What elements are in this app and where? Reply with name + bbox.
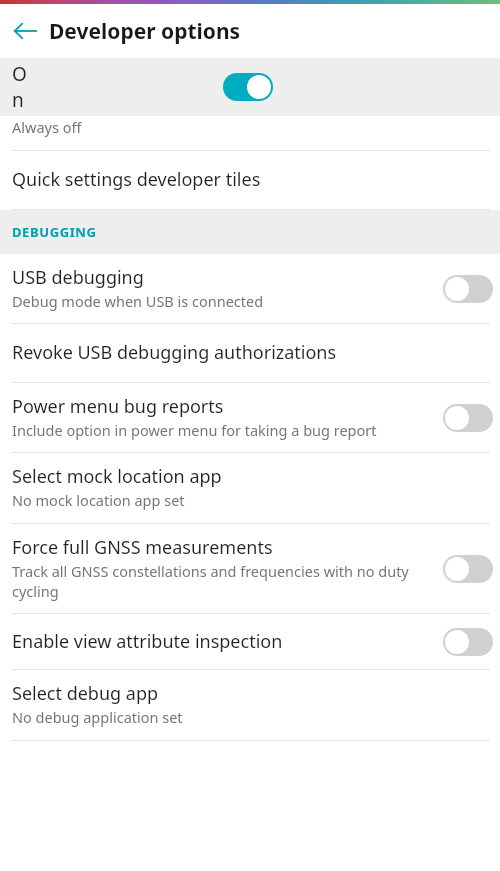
staticText: No debug application set: [12, 707, 183, 727]
button[interactable]: Select mock location app: [0, 453, 500, 523]
staticText: Force full GNSS measurements: [12, 535, 273, 560]
staticText: Developer options: [49, 17, 241, 46]
staticText: Revoke USB debugging authorizations: [12, 340, 337, 365]
button[interactable]: Select debug app: [0, 670, 500, 740]
button[interactable]: Toggle on: [220, 67, 276, 107]
button[interactable]: Revoke USB debugging authorizations: [0, 324, 500, 382]
staticText: Select mock location app: [12, 464, 222, 489]
button[interactable]: Enable view attribute inspection: [0, 614, 500, 669]
staticText: Debug mode when USB is connected: [12, 291, 264, 311]
button[interactable]: Toggle off: [440, 549, 496, 589]
staticText: Always off: [12, 117, 82, 137]
button[interactable]: Power menu bug reports: [0, 383, 500, 452]
button[interactable]: Always off: [0, 116, 500, 150]
button[interactable]: On: [0, 58, 500, 116]
staticText: Enable view attribute inspection: [12, 629, 283, 654]
button[interactable]: USB debugging: [0, 254, 500, 323]
button[interactable]: Toggle off: [440, 398, 496, 438]
staticText: Track all GNSS constellations and freque…: [12, 561, 432, 601]
button[interactable]: Toggle off: [440, 622, 496, 662]
button[interactable]: Toggle off: [440, 269, 496, 309]
staticText: Quick settings developer tiles: [12, 167, 261, 192]
button[interactable]: Force full GNSS measurements: [0, 524, 500, 613]
staticText: Power menu bug reports: [12, 394, 224, 419]
staticText: USB debugging: [12, 265, 144, 290]
button[interactable]: Quick settings developer tiles: [0, 151, 500, 209]
staticText: No mock location app set: [12, 490, 185, 510]
staticText: Select debug app: [12, 681, 159, 706]
staticText: DEBUGGING: [12, 223, 97, 241]
button[interactable]: Back: [2, 8, 48, 54]
staticText: Include option in power menu for taking …: [12, 420, 377, 440]
